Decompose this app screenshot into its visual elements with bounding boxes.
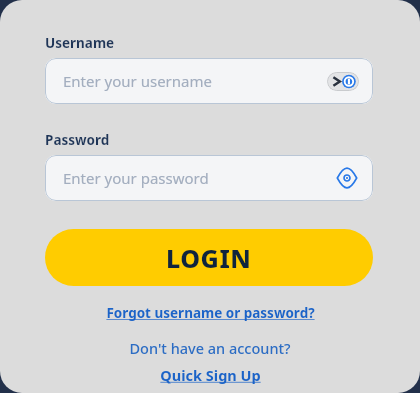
button[interactable]: Quick Sign Up — [156, 363, 265, 387]
staticText: Password — [45, 131, 110, 149]
staticText: Quick Sign Up — [160, 365, 261, 385]
staticText: Enter your password — [63, 168, 209, 188]
staticText: LOGIN — [166, 241, 252, 275]
button[interactable]: LOGIN — [45, 229, 373, 286]
staticText: Username — [45, 34, 115, 52]
button[interactable]: Enter your password — [45, 155, 373, 201]
staticText: Don't have an account? — [129, 338, 291, 358]
button[interactable]: Enter your username — [45, 58, 373, 104]
button[interactable]: Show password — [334, 165, 360, 191]
button[interactable]: Autofill password — [327, 72, 359, 91]
button[interactable]: Forgot username or password? — [102, 302, 319, 324]
staticText: Enter your username — [63, 71, 212, 91]
staticText: Forgot username or password? — [106, 304, 315, 322]
